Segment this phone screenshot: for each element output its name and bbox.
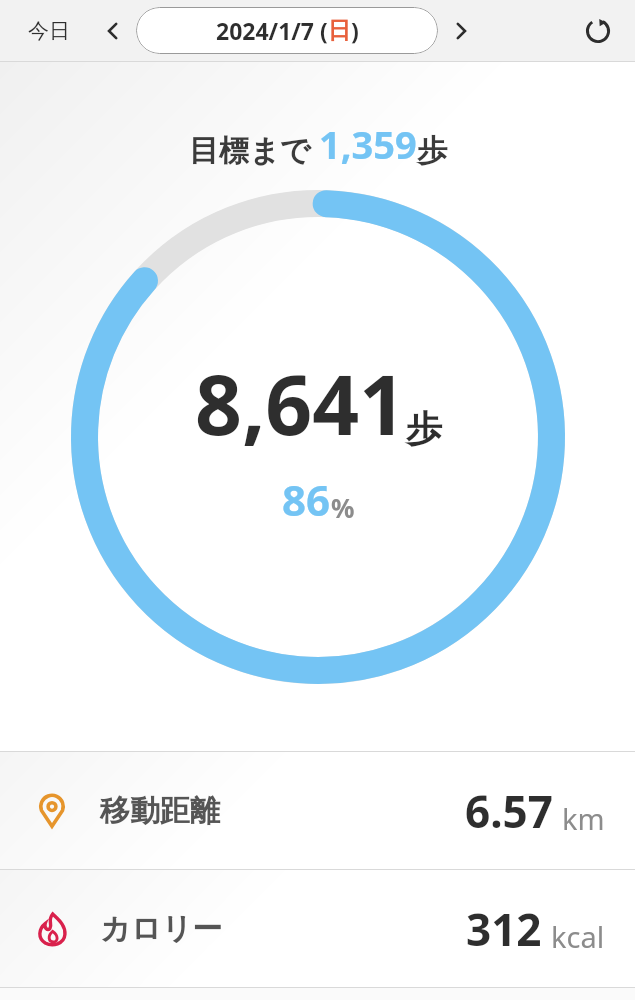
button[interactable]: カロリー	[0, 870, 635, 987]
staticText: )	[351, 15, 359, 46]
staticText: 今日	[28, 18, 70, 44]
button[interactable]: 2024/1/7 (	[136, 7, 438, 54]
staticText: kcal	[551, 917, 605, 956]
button[interactable]: Next day	[442, 12, 480, 50]
staticText: 目標まで	[189, 129, 319, 170]
staticText: 6.57	[465, 781, 553, 841]
button[interactable]: Refresh	[575, 8, 621, 54]
staticText: 歩	[417, 132, 447, 170]
staticText: カロリー	[100, 910, 223, 948]
staticText: 1,359	[319, 118, 417, 170]
staticText: 2024/1/7 (	[216, 15, 328, 46]
staticText: %	[331, 490, 355, 525]
staticText: 歩	[406, 406, 442, 451]
button[interactable]: 今日	[22, 12, 76, 50]
button[interactable]: Previous day	[94, 12, 132, 50]
staticText: 86	[282, 471, 331, 528]
staticText: 8,641	[195, 347, 406, 459]
staticText: 日	[328, 16, 351, 45]
button[interactable]: 移動距離	[0, 752, 635, 869]
staticText: km	[562, 799, 605, 838]
staticText: 312	[466, 899, 542, 959]
staticText: 移動距離	[100, 792, 220, 830]
